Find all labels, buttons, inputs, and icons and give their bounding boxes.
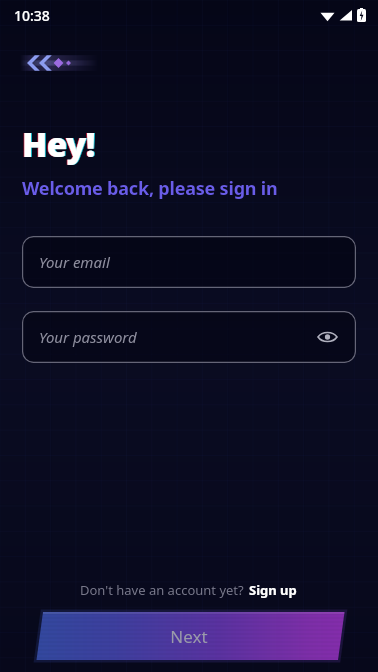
staticText: Your password [39, 327, 137, 347]
other: App logo [20, 50, 98, 76]
staticText: Don't have an account yet? [80, 581, 248, 599]
button[interactable]: Your email [22, 236, 356, 288]
staticText: Your email [39, 252, 110, 272]
staticText: Hey! [23, 122, 96, 167]
staticText: Welcome back, please sign in [22, 176, 278, 201]
staticText: Next [170, 625, 208, 648]
staticText: 10:38 [14, 6, 50, 25]
button[interactable]: Next [0, 610, 378, 668]
staticText: Hey! [21, 122, 94, 167]
staticText: Sign up [249, 581, 297, 599]
staticText: Hey! [22, 122, 95, 167]
button[interactable]: Sign up [248, 579, 298, 601]
button[interactable]: Show password [314, 324, 340, 350]
button[interactable]: Your password [22, 311, 356, 363]
